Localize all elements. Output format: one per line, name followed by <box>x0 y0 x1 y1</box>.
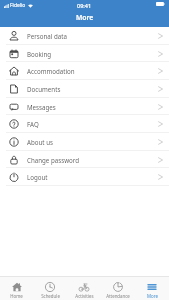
staticText: Home <box>10 293 23 299</box>
staticText: 09:41 <box>77 2 92 9</box>
staticText: More <box>76 13 94 22</box>
button[interactable]: Documents <box>0 80 169 98</box>
button[interactable]: About us <box>0 133 169 151</box>
button[interactable]: Attendance <box>101 277 135 299</box>
staticText: Accommodation <box>27 67 75 75</box>
staticText: Messages <box>27 103 56 111</box>
staticText: Documents <box>27 85 61 93</box>
button[interactable]: Messages <box>0 98 169 115</box>
button[interactable]: More <box>135 277 169 299</box>
staticText: Change password <box>27 156 79 164</box>
staticText: About us <box>27 138 53 146</box>
staticText: Schedule <box>41 293 60 299</box>
button[interactable]: Personal data <box>0 27 169 45</box>
button[interactable]: Accommodation <box>0 62 169 80</box>
button[interactable]: Change password <box>0 151 169 168</box>
button[interactable]: Home <box>0 277 33 299</box>
button[interactable]: Logout <box>0 168 169 186</box>
button[interactable]: Activities <box>67 277 101 299</box>
staticText: Booking <box>27 50 52 58</box>
staticText: Activities <box>75 293 94 299</box>
button[interactable]: Schedule <box>33 277 67 299</box>
staticText: Attendance <box>106 293 130 299</box>
staticText: Personal data <box>27 32 67 40</box>
staticText: FAQ <box>27 120 39 128</box>
button[interactable]: FAQ <box>0 115 169 133</box>
staticText: More <box>147 293 158 299</box>
staticText: Logout <box>27 173 48 181</box>
button[interactable]: Booking <box>0 45 169 62</box>
staticText: Fidelio <box>10 2 26 9</box>
